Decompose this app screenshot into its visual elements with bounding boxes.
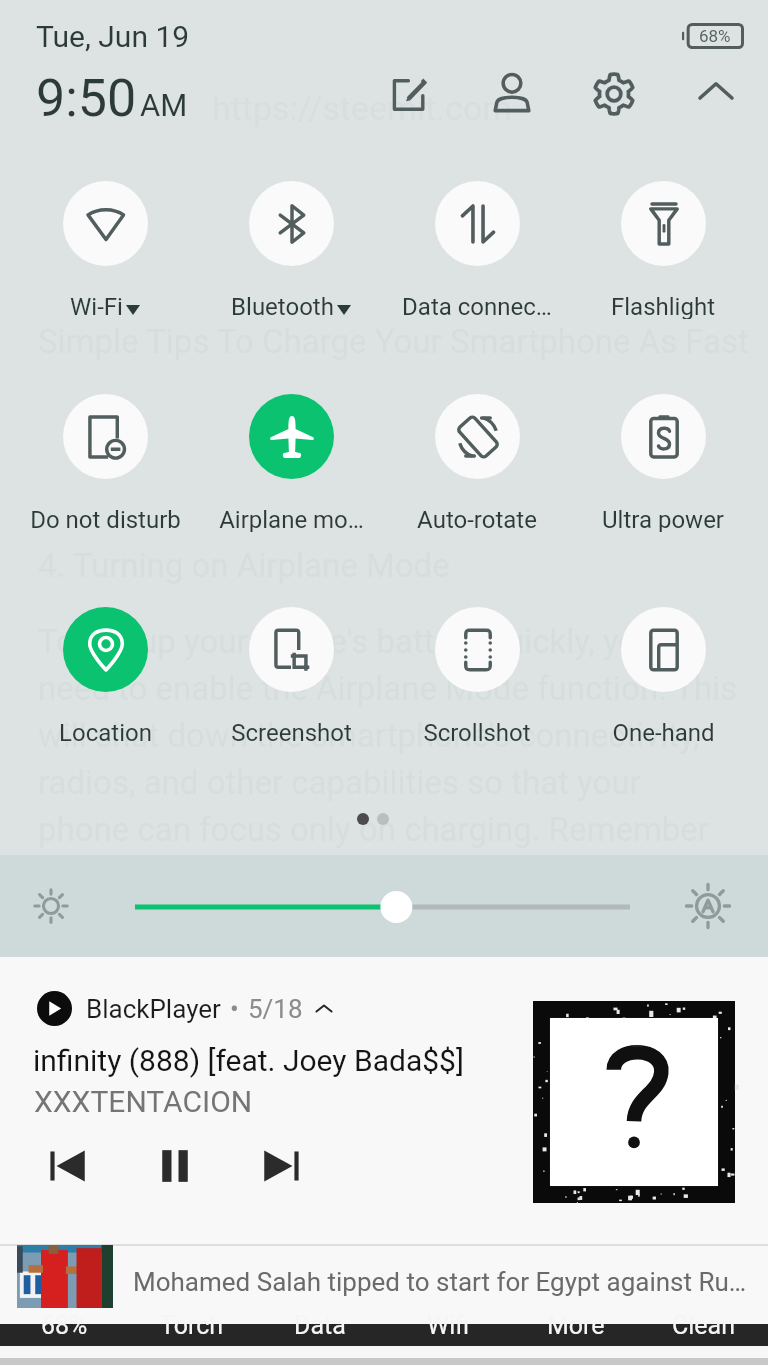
button[interactable]: Screenshot: [198, 597, 384, 745]
staticText: Screenshot: [231, 719, 352, 745]
button[interactable]: Automatic brightness: [674, 872, 742, 940]
staticText: Data connec…: [402, 293, 552, 319]
button[interactable]: BlackPlayer: [0, 957, 768, 1244]
button[interactable]: Collapse: [689, 66, 743, 120]
staticText: Data: [294, 1311, 346, 1339]
staticText: Location: [59, 719, 152, 745]
button[interactable]: Wifi: [384, 1311, 512, 1339]
staticText: AM: [140, 87, 188, 123]
staticText: Do not disturb: [30, 506, 181, 532]
staticText: XXXTENTACION: [34, 1084, 253, 1119]
button[interactable]: Collapse notification: [309, 994, 339, 1024]
staticText: Ultra power: [602, 506, 724, 532]
button[interactable]: Next: [253, 1138, 309, 1194]
staticText: •: [230, 994, 239, 1024]
button[interactable]: Airplane mo…: [198, 384, 384, 532]
staticText: Mohamed Salah tipped to start for Egypt …: [133, 1267, 747, 1297]
staticText: Airplane mo…: [219, 506, 364, 532]
button[interactable]: Do not disturb: [12, 384, 198, 532]
button[interactable]: Data connec…: [384, 171, 570, 319]
button[interactable]: Location: [12, 597, 198, 745]
button[interactable]: Dim brightness: [20, 875, 82, 937]
button[interactable]: Mohamed Salah tipped to start for Egypt …: [0, 1244, 768, 1322]
staticText: Auto-rotate: [417, 506, 537, 532]
staticText: Tue, Jun 19: [36, 19, 190, 54]
staticText: need to enable the Airplane Mode functio…: [38, 669, 738, 708]
staticText: 68%: [41, 1311, 88, 1339]
button[interactable]: Battery 68 percent: [682, 23, 744, 49]
staticText: 9:50: [36, 68, 137, 129]
button[interactable]: Scrollshot: [384, 597, 570, 745]
button[interactable]: Ultra power: [570, 384, 756, 532]
staticText: Flashlight: [611, 293, 715, 319]
button[interactable]: Flashlight: [570, 171, 756, 319]
staticText: will shut down the smartphone's connecti…: [38, 716, 700, 755]
staticText: phone can focus only on charging. Rememb…: [38, 810, 710, 849]
staticText: Torch: [160, 1311, 224, 1339]
staticText: Bluetooth: [231, 293, 334, 319]
staticText: BlackPlayer: [86, 994, 221, 1024]
button[interactable]: Settings: [587, 67, 641, 121]
staticText: 68%: [699, 26, 731, 46]
button[interactable]: Clean: [640, 1311, 768, 1339]
button[interactable]: Edit: [383, 67, 437, 121]
button[interactable]: Brightness slider: [130, 897, 635, 917]
staticText: Wi-Fi: [70, 293, 123, 319]
button[interactable]: Pause: [147, 1138, 203, 1194]
staticText: Clean: [672, 1311, 736, 1339]
button[interactable]: Wi-Fi: [12, 171, 198, 319]
button[interactable]: Torch: [128, 1311, 256, 1339]
button[interactable]: More: [512, 1311, 640, 1339]
staticText: 5/18: [248, 994, 303, 1024]
button[interactable]: Bluetooth: [198, 171, 384, 319]
button[interactable]: Data: [256, 1311, 384, 1339]
button[interactable]: User profile: [485, 66, 539, 120]
staticText: To top up your phone's battery quickly, …: [38, 622, 656, 661]
staticText: Scrollshot: [423, 719, 531, 745]
staticText: One-hand: [612, 719, 715, 745]
staticText: infinity (888) [feat. Joey Bada$$]: [33, 1043, 464, 1078]
staticText: Wifi: [427, 1311, 470, 1339]
staticText: More: [547, 1311, 605, 1339]
staticText: https://steemit.com: [212, 88, 513, 128]
button[interactable]: Auto-rotate: [384, 384, 570, 532]
button[interactable]: One-hand: [570, 597, 756, 745]
button[interactable]: 68%: [0, 1311, 128, 1339]
button[interactable]: Previous: [40, 1138, 96, 1194]
